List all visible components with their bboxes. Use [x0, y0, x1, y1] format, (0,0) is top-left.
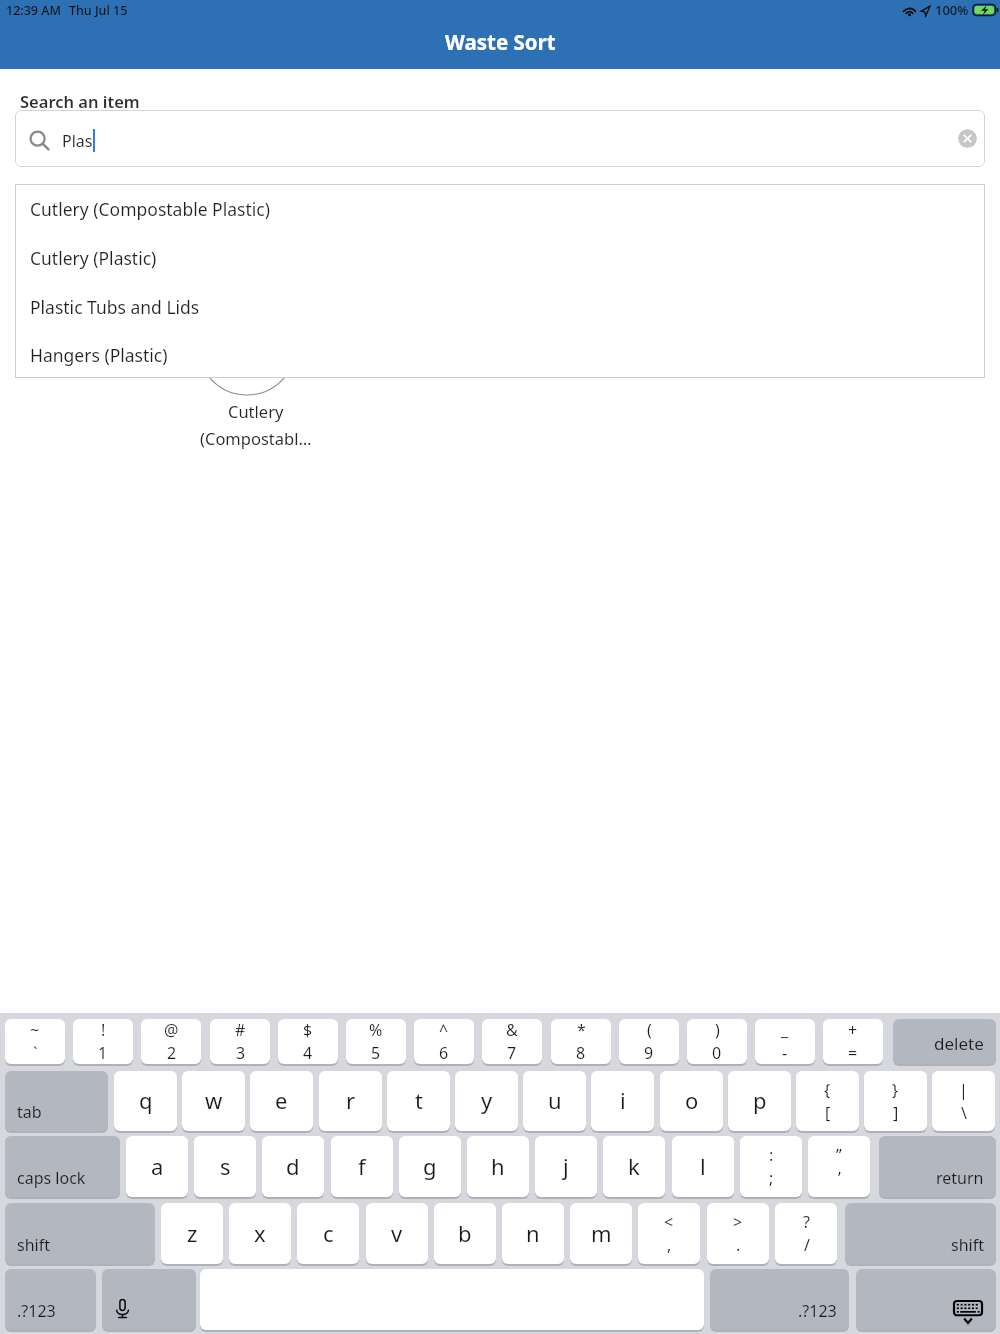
button[interactable]: shift	[5, 1203, 155, 1264]
staticText: 9	[644, 1042, 654, 1064]
staticText: {	[824, 1079, 831, 1101]
button[interactable]: ?	[775, 1203, 837, 1264]
button[interactable]: l	[672, 1136, 734, 1197]
button[interactable]: .?123	[5, 1269, 96, 1330]
button[interactable]: Hide keyboard	[856, 1269, 996, 1330]
button[interactable]: }	[864, 1071, 927, 1131]
staticText: Cutlery	[228, 400, 284, 422]
button[interactable]: x	[229, 1203, 291, 1264]
staticText: ~	[30, 1019, 40, 1041]
staticText: ?	[803, 1211, 810, 1233]
staticText: [	[825, 1102, 831, 1124]
button[interactable]: n	[502, 1203, 564, 1264]
button[interactable]: p	[728, 1071, 791, 1131]
button[interactable]: Cutlery (Compostable Plastic)	[15, 184, 985, 233]
button[interactable]: v	[366, 1203, 428, 1264]
staticText: caps lock	[17, 1167, 86, 1189]
button[interactable]: o	[660, 1071, 723, 1131]
button[interactable]: w	[182, 1071, 245, 1131]
staticText: tab	[17, 1101, 42, 1123]
button[interactable]: k	[603, 1136, 665, 1197]
button[interactable]: f	[331, 1136, 393, 1197]
button[interactable]: s	[194, 1136, 256, 1197]
button[interactable]: Cutlery	[166, 276, 346, 476]
button[interactable]: Cutlery (Plastic)	[15, 233, 985, 282]
button[interactable]: u	[523, 1071, 586, 1131]
button[interactable]: !	[73, 1019, 133, 1064]
button[interactable]: >	[707, 1203, 769, 1264]
button[interactable]: #	[210, 1019, 270, 1064]
button[interactable]: g	[399, 1136, 461, 1197]
staticText: !	[101, 1019, 106, 1041]
button[interactable]: d	[262, 1136, 324, 1197]
button[interactable]: %	[346, 1019, 406, 1064]
staticText: g	[423, 1151, 437, 1181]
button[interactable]: b	[434, 1203, 496, 1264]
staticText: .?123	[17, 1300, 56, 1322]
button[interactable]: h	[467, 1136, 529, 1197]
staticText: Plastic Tubs and Lids	[30, 295, 200, 319]
button[interactable]: tab	[5, 1071, 108, 1131]
button[interactable]: shift	[845, 1203, 996, 1264]
button[interactable]: Plastic Tubs and Lids	[15, 282, 985, 331]
button[interactable]: z	[161, 1203, 223, 1264]
staticText: 7	[507, 1042, 517, 1064]
button[interactable]: caps lock	[5, 1136, 120, 1197]
button[interactable]: _	[755, 1019, 815, 1064]
staticText: j	[563, 1151, 569, 1181]
staticText: m	[591, 1218, 612, 1248]
staticText: :	[769, 1144, 774, 1166]
staticText: shift	[17, 1234, 50, 1256]
button[interactable]: y	[455, 1071, 518, 1131]
button[interactable]: +	[823, 1019, 883, 1064]
button[interactable]: i	[591, 1071, 654, 1131]
staticText: <	[664, 1211, 674, 1233]
button[interactable]: Dictate	[102, 1269, 196, 1330]
button[interactable]: :	[740, 1136, 802, 1197]
staticText: ^	[439, 1019, 449, 1041]
staticText: @	[164, 1019, 179, 1041]
button[interactable]: &	[482, 1019, 542, 1064]
staticText: Cutlery (Compostable Plastic)	[30, 197, 270, 221]
button[interactable]: j	[535, 1136, 597, 1197]
staticText: h	[491, 1151, 505, 1181]
staticText: k	[628, 1151, 640, 1181]
button[interactable]: <	[638, 1203, 700, 1264]
button[interactable]: return	[879, 1136, 996, 1197]
button[interactable]: q	[114, 1071, 177, 1131]
button[interactable]: Clear text	[958, 129, 977, 148]
button[interactable]: ~	[5, 1019, 65, 1064]
button[interactable]: c	[297, 1203, 359, 1264]
button[interactable]: {	[796, 1071, 859, 1131]
button[interactable]: m	[570, 1203, 632, 1264]
button[interactable]: t	[387, 1071, 450, 1131]
button[interactable]: Hangers (Plastic)	[15, 331, 985, 378]
button[interactable]: |	[932, 1071, 995, 1131]
staticText: w	[205, 1085, 223, 1115]
button[interactable]: r	[319, 1071, 382, 1131]
staticText: 0	[712, 1042, 722, 1064]
button[interactable]: *	[551, 1019, 611, 1064]
staticText: shift	[951, 1234, 984, 1256]
staticText: +	[848, 1019, 858, 1041]
staticText: y	[481, 1085, 493, 1115]
button[interactable]: ^	[414, 1019, 474, 1064]
button[interactable]: $	[278, 1019, 338, 1064]
staticText: l	[700, 1151, 706, 1181]
staticText: 5	[371, 1042, 381, 1064]
button[interactable]: Plas	[15, 110, 985, 167]
staticText: .	[736, 1234, 741, 1256]
staticText: }	[892, 1079, 899, 1101]
button[interactable]: a	[126, 1136, 188, 1197]
staticText: return	[936, 1167, 984, 1189]
button[interactable]: (	[619, 1019, 679, 1064]
staticText: 100%	[935, 1, 969, 19]
button[interactable]: delete	[893, 1019, 996, 1064]
button[interactable]: @	[141, 1019, 201, 1064]
button[interactable]: e	[250, 1071, 313, 1131]
button[interactable]: ”	[808, 1136, 870, 1197]
button[interactable]: .?123	[710, 1269, 849, 1330]
button[interactable]: )	[687, 1019, 747, 1064]
staticText: (Compostabl…	[200, 427, 312, 449]
